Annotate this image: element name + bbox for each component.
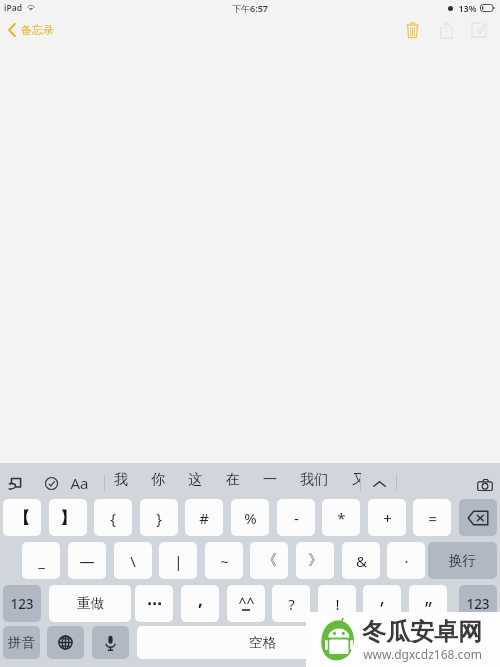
staticText: &: [356, 551, 367, 571]
button[interactable]: ^^: [227, 585, 265, 622]
staticText: 这: [188, 471, 202, 489]
staticText: 】: [60, 508, 76, 528]
button[interactable]: 我们: [293, 470, 335, 490]
staticText: ,: [198, 588, 203, 611]
staticText: ⋯: [147, 595, 162, 612]
staticText: #: [199, 508, 209, 528]
staticText: -: [294, 508, 299, 528]
button[interactable]: {: [94, 499, 132, 536]
button[interactable]: ⋯: [135, 585, 173, 622]
button[interactable]: Delete: [398, 16, 426, 44]
button[interactable]: 换行: [428, 542, 497, 579]
button[interactable]: !: [318, 585, 356, 622]
button[interactable]: _: [22, 542, 60, 579]
button[interactable]: ,: [181, 585, 219, 622]
staticText: %: [244, 508, 257, 528]
button[interactable]: 】: [49, 499, 87, 536]
button[interactable]: %: [231, 499, 269, 536]
staticText: ?: [288, 594, 295, 614]
button[interactable]: 你: [144, 470, 172, 490]
staticText: *: [337, 508, 346, 528]
button[interactable]: 又: [345, 470, 373, 490]
button[interactable]: Compose: [465, 16, 493, 44]
button[interactable]: 在: [219, 470, 247, 490]
staticText: 》: [308, 551, 323, 570]
staticText: 123: [466, 595, 490, 613]
button[interactable]: 123: [459, 585, 497, 622]
staticText: 下午6:57: [232, 2, 268, 14]
button[interactable]: Switch keyboard: [47, 626, 84, 659]
staticText: 一: [263, 471, 277, 489]
button[interactable]: }: [140, 499, 178, 536]
staticText: 123: [10, 595, 34, 613]
staticText: !: [335, 594, 340, 614]
button[interactable]: ”: [409, 585, 447, 622]
button[interactable]: Confirm: [43, 475, 59, 491]
button[interactable]: Backspace: [459, 499, 497, 536]
staticText: ’: [380, 596, 384, 622]
button[interactable]: 123: [3, 585, 41, 622]
staticText: |: [174, 551, 183, 571]
staticText: =: [428, 508, 437, 528]
button[interactable]: 空格: [137, 626, 497, 659]
button[interactable]: 一: [256, 470, 284, 490]
staticText: 备忘录: [21, 23, 54, 37]
staticText: }: [156, 508, 162, 528]
staticText: 《: [262, 551, 277, 570]
staticText: 【: [14, 508, 30, 528]
staticText: 在: [226, 471, 240, 489]
button[interactable]: 【: [3, 499, 41, 536]
staticText: 13%: [458, 2, 477, 14]
staticText: ”: [425, 596, 432, 622]
button[interactable]: —: [68, 542, 106, 579]
staticText: 冬瓜安卓网: [362, 617, 482, 647]
button[interactable]: Dictation: [92, 626, 129, 659]
staticText: ·: [404, 551, 409, 571]
button[interactable]: +: [368, 499, 406, 536]
button[interactable]: Share: [432, 16, 460, 44]
staticText: iPad: [4, 2, 22, 14]
button[interactable]: \: [114, 542, 152, 579]
staticText: Aa: [70, 473, 89, 493]
button[interactable]: ’: [363, 585, 401, 622]
staticText: 我们: [300, 471, 328, 489]
staticText: 换行: [449, 552, 476, 569]
button[interactable]: Expand candidates: [370, 475, 388, 493]
staticText: 我: [114, 471, 128, 489]
staticText: _: [38, 551, 45, 571]
staticText: 又: [352, 471, 366, 489]
staticText: 重做: [77, 595, 104, 612]
button[interactable]: *: [322, 499, 360, 536]
button[interactable]: -: [277, 499, 315, 536]
button[interactable]: ?: [272, 585, 310, 622]
button[interactable]: =: [413, 499, 451, 536]
staticText: ~: [220, 551, 229, 571]
button[interactable]: #: [185, 499, 223, 536]
button[interactable]: Aa: [68, 473, 90, 493]
button[interactable]: 重做: [49, 585, 131, 622]
button[interactable]: Undo: [7, 475, 23, 491]
button[interactable]: 备忘录: [8, 23, 58, 37]
staticText: —: [79, 551, 95, 571]
staticText: \: [130, 551, 136, 571]
staticText: www.dgxcdz168.com: [363, 646, 482, 662]
button[interactable]: 这: [181, 470, 209, 490]
staticText: +: [383, 508, 392, 528]
button[interactable]: ·: [387, 542, 425, 579]
button[interactable]: &: [342, 542, 380, 579]
button[interactable]: ~: [205, 542, 243, 579]
button[interactable]: Camera: [476, 476, 494, 494]
button[interactable]: 》: [296, 542, 334, 579]
staticText: {: [110, 508, 116, 528]
button[interactable]: 我: [107, 470, 135, 490]
button[interactable]: |: [159, 542, 197, 579]
staticText: 拼音: [8, 634, 35, 651]
staticText: ^^: [238, 593, 255, 609]
staticText: 空格: [249, 634, 276, 651]
staticText: 你: [151, 471, 165, 489]
button[interactable]: 拼音: [3, 626, 40, 659]
button[interactable]: 《: [250, 542, 288, 579]
